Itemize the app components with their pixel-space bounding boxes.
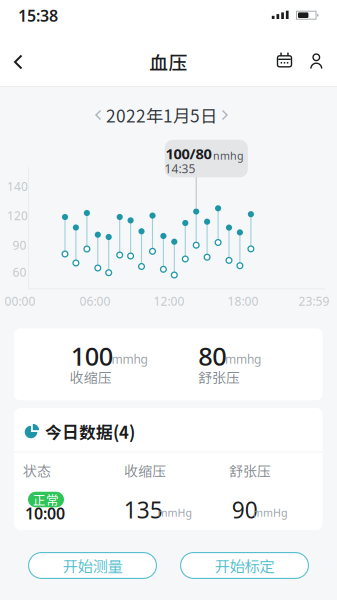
staticText: 血压 (149, 48, 187, 75)
staticText: 舒张压 (198, 367, 240, 387)
button[interactable]: Profile (302, 41, 330, 81)
staticText: mmhg (225, 351, 261, 367)
staticText: 开始标定 (214, 554, 274, 577)
staticText: 状态 (23, 460, 51, 481)
staticText: 正常 (33, 490, 59, 509)
staticText: 15:38 (18, 5, 58, 26)
button[interactable]: 开始测量 (28, 552, 157, 579)
staticText: 100 (71, 339, 113, 373)
staticText: mmhg (111, 351, 147, 367)
button[interactable]: Calendar (269, 40, 299, 80)
staticText: 14:35 (164, 160, 195, 176)
button[interactable]: 开始标定 (180, 552, 309, 579)
button[interactable]: Back (1, 40, 37, 84)
staticText: 90 (232, 495, 258, 525)
staticText: 140 (7, 178, 28, 194)
staticText: nmhg (213, 148, 244, 163)
staticText: 收缩压 (70, 367, 112, 387)
staticText: mmHg (157, 505, 192, 520)
staticText: 12:00 (153, 293, 184, 309)
staticText: 00:00 (4, 293, 35, 309)
staticText: 10:00 (25, 503, 65, 524)
staticText: 06:00 (79, 293, 110, 309)
staticText: 2022年1月5日 (106, 102, 217, 128)
staticText: mmHg (253, 505, 288, 520)
staticText: 135 (124, 495, 163, 525)
staticText: 120 (7, 208, 28, 223)
staticText: 60 (12, 264, 26, 280)
button[interactable]: Previous day (86, 100, 110, 130)
staticText: 收缩压 (124, 460, 166, 481)
staticText: 今日数据(4) (45, 419, 135, 443)
staticText: 23:59 (298, 293, 329, 309)
button[interactable]: 2022年1月5日 (101, 100, 221, 130)
staticText: 18:00 (227, 293, 258, 309)
staticText: 舒张压 (229, 460, 271, 481)
button[interactable]: Next day (213, 100, 237, 130)
staticText: 80 (198, 339, 226, 373)
staticText: 开始测量 (62, 554, 122, 577)
staticText: 100/80 (165, 144, 211, 163)
staticText: 90 (12, 237, 26, 253)
